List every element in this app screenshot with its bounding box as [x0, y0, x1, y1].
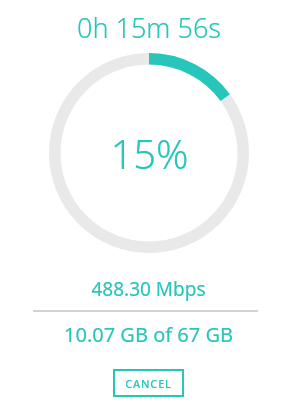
button[interactable]: CANCEL [113, 369, 184, 397]
staticText: 0h 15m 56s [77, 9, 221, 46]
staticText: 15% [110, 126, 189, 180]
staticText: 10.07 GB of 67 GB [64, 321, 233, 348]
staticText: CANCEL [125, 376, 172, 391]
staticText: 488.30 Mbps [91, 276, 206, 302]
